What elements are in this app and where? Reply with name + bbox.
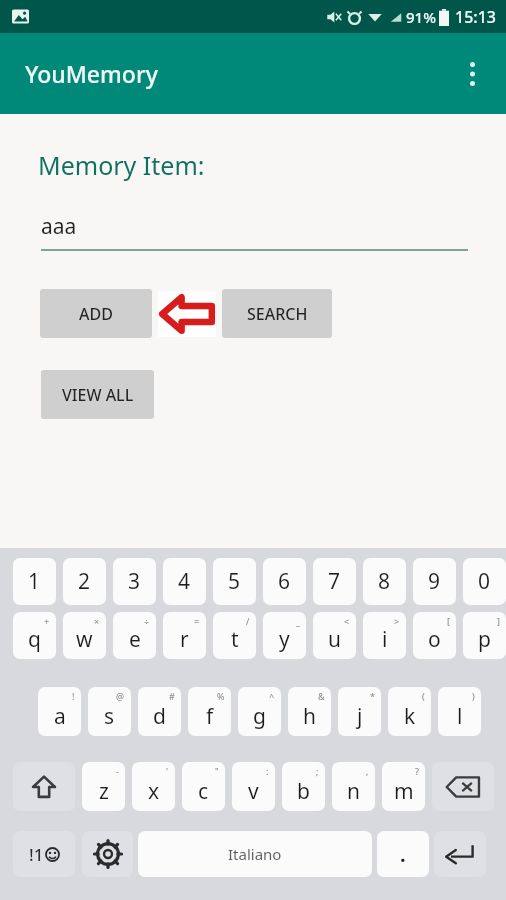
staticText: a: [54, 702, 66, 731]
button[interactable]: %: [188, 687, 231, 736]
button[interactable]: -: [82, 762, 125, 811]
staticText: ;: [316, 765, 319, 777]
button[interactable]: <: [313, 612, 356, 659]
staticText: g: [253, 702, 266, 731]
staticText: *: [370, 690, 375, 702]
button[interactable]: ': [132, 762, 175, 811]
button[interactable]: ×: [63, 612, 106, 659]
staticText: +: [44, 615, 50, 627]
button[interactable]: 7: [313, 558, 356, 605]
button[interactable]: 6: [263, 558, 306, 605]
staticText: y: [279, 625, 290, 654]
button[interactable]: 2: [63, 558, 106, 605]
button[interactable]: Enter: [434, 831, 486, 877]
staticText: h: [303, 702, 316, 731]
staticText: 2: [78, 567, 91, 596]
staticText: !: [72, 690, 75, 702]
staticText: b: [297, 777, 310, 806]
staticText: [: [447, 615, 450, 627]
button[interactable]: More options: [450, 52, 494, 96]
button[interactable]: !: [38, 687, 81, 736]
staticText: 3: [128, 567, 141, 596]
staticText: 1: [28, 567, 41, 596]
staticText: f: [206, 702, 214, 731]
staticText: /: [246, 615, 250, 627]
staticText: -: [116, 765, 119, 777]
button[interactable]: >: [363, 612, 406, 659]
button[interactable]: ): [438, 687, 481, 736]
button[interactable]: /: [213, 612, 256, 659]
button[interactable]: &: [288, 687, 331, 736]
button[interactable]: ADD: [40, 289, 152, 338]
staticText: o: [428, 625, 441, 654]
staticText: (: [422, 690, 425, 702]
button[interactable]: ,: [332, 762, 375, 811]
button[interactable]: Italiano: [138, 831, 372, 877]
button[interactable]: 9: [413, 558, 456, 605]
staticText: 4: [178, 567, 191, 596]
staticText: k: [404, 702, 416, 731]
staticText: 6: [278, 567, 291, 596]
staticText: ?: [415, 765, 419, 777]
button[interactable]: 3: [113, 558, 156, 605]
staticText: n: [347, 777, 360, 806]
staticText: x: [148, 777, 160, 806]
staticText: v: [248, 777, 259, 806]
staticText: &: [318, 690, 325, 702]
button[interactable]: _: [263, 612, 306, 659]
button[interactable]: SEARCH: [222, 289, 332, 338]
staticText: @: [116, 690, 125, 702]
button[interactable]: 0: [463, 558, 506, 605]
staticText: i: [382, 625, 388, 654]
staticText: #: [169, 690, 175, 702]
button[interactable]: ^: [238, 687, 281, 736]
staticText: j: [357, 702, 363, 731]
button[interactable]: Symbols and emoji: [13, 831, 75, 877]
button[interactable]: ": [182, 762, 225, 811]
button[interactable]: .: [377, 831, 429, 877]
button[interactable]: VIEW ALL: [41, 370, 154, 419]
staticText: .: [400, 841, 406, 868]
button[interactable]: #: [138, 687, 181, 736]
staticText: 8: [378, 567, 391, 596]
staticText: ADD: [79, 303, 113, 325]
staticText: p: [478, 625, 491, 654]
staticText: c: [198, 777, 209, 806]
button[interactable]: ?: [382, 762, 425, 811]
button[interactable]: ]: [463, 612, 506, 659]
staticText: ]: [497, 615, 500, 627]
staticText: =: [194, 615, 200, 627]
button[interactable]: (: [388, 687, 431, 736]
button[interactable]: 5: [213, 558, 256, 605]
staticText: YouMemory: [25, 58, 158, 89]
staticText: Italiano: [228, 844, 282, 864]
button[interactable]: Settings: [82, 831, 133, 877]
staticText: q: [28, 625, 41, 654]
button[interactable]: *: [338, 687, 381, 736]
button[interactable]: :: [232, 762, 275, 811]
staticText: d: [153, 702, 166, 731]
button[interactable]: 1: [13, 558, 56, 605]
staticText: :: [266, 765, 269, 777]
button[interactable]: 8: [363, 558, 406, 605]
button[interactable]: [: [413, 612, 456, 659]
staticText: ": [215, 765, 219, 777]
staticText: 9: [428, 567, 441, 596]
staticText: u: [328, 625, 341, 654]
button[interactable]: Backspace: [432, 762, 494, 811]
staticText: ,: [366, 765, 369, 777]
button[interactable]: 4: [163, 558, 206, 605]
button[interactable]: ÷: [113, 612, 156, 659]
staticText: t: [231, 625, 239, 654]
button[interactable]: +: [13, 612, 56, 659]
button[interactable]: ;: [282, 762, 325, 811]
staticText: ÷: [144, 615, 150, 627]
staticText: %: [217, 690, 225, 702]
staticText: Memory Item:: [38, 148, 205, 182]
button[interactable]: @: [88, 687, 131, 736]
staticText: ^: [269, 690, 275, 702]
staticText: e: [129, 625, 141, 654]
button[interactable]: Shift: [13, 762, 75, 811]
staticText: z: [99, 777, 109, 806]
button[interactable]: =: [163, 612, 206, 659]
